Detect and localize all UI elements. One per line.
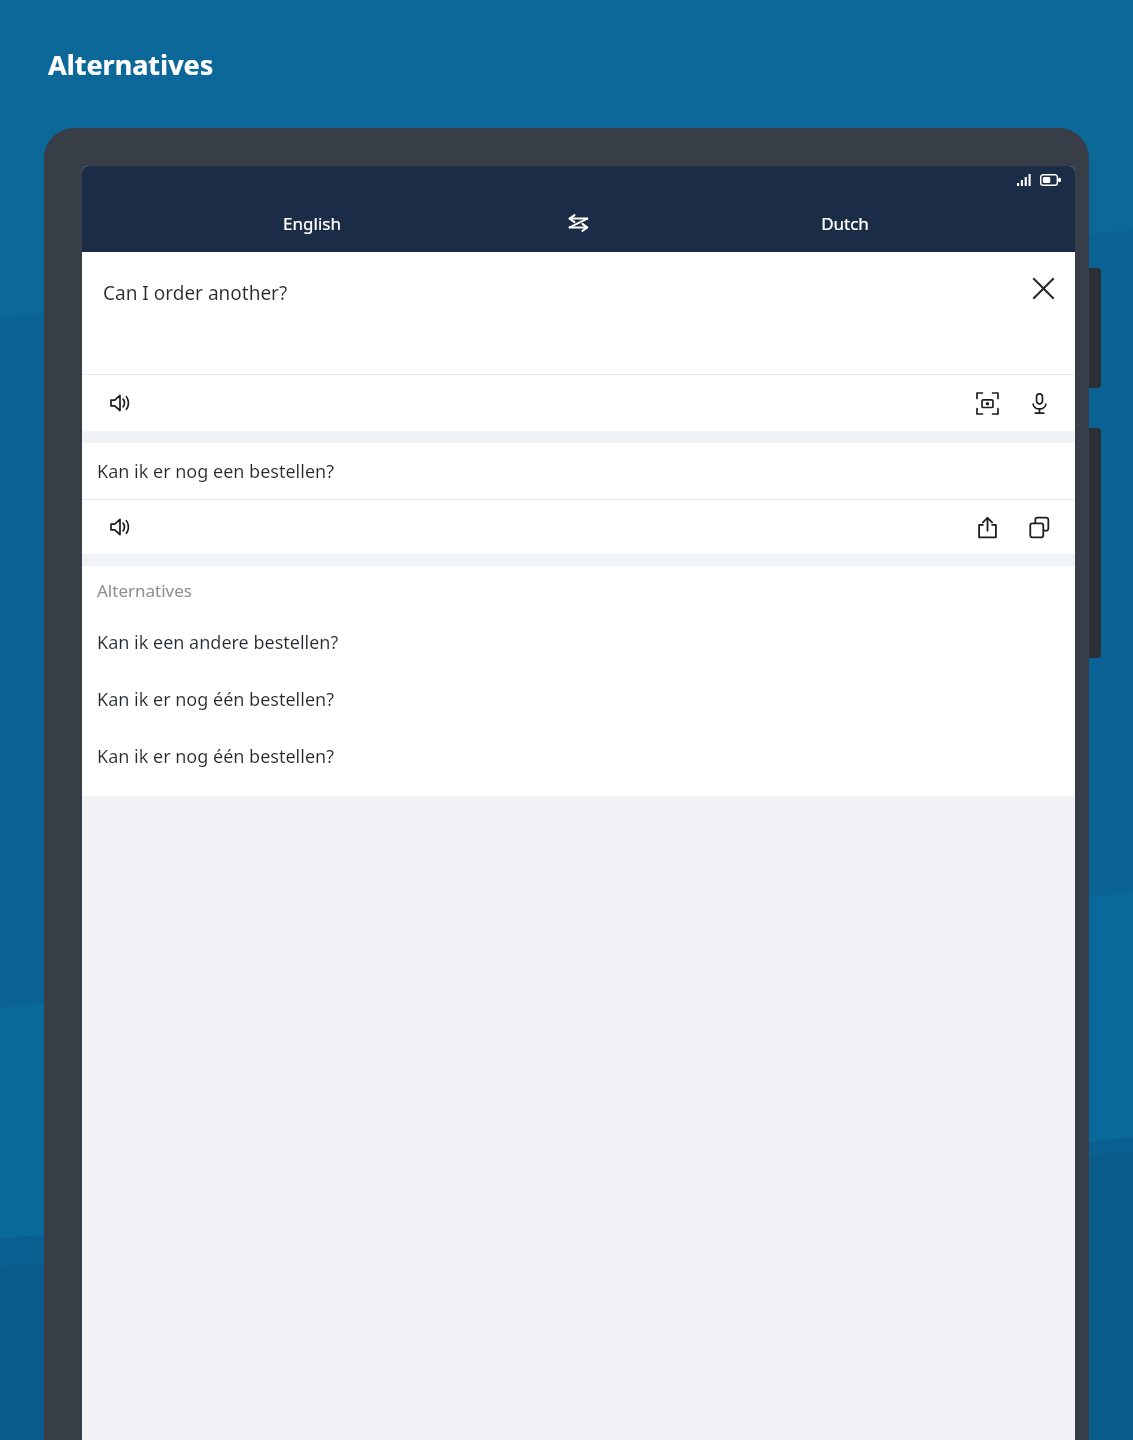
button[interactable]: Clear text: [1017, 262, 1069, 314]
button[interactable]: Copy: [1013, 501, 1065, 553]
button[interactable]: Swap languages: [541, 194, 615, 252]
staticText: Kan ik er nog een bestellen?: [97, 459, 334, 484]
button[interactable]: Voice input: [1013, 377, 1065, 429]
staticText: Dutch: [821, 212, 869, 235]
staticText: Kan ik er nog één bestellen?: [97, 687, 334, 712]
button[interactable]: Scan camera: [961, 377, 1013, 429]
staticText: Kan ik er nog één bestellen?: [97, 744, 334, 769]
button[interactable]: Listen translation: [94, 501, 146, 553]
button[interactable]: Dutch: [615, 194, 1075, 252]
button[interactable]: Share: [961, 501, 1013, 553]
button[interactable]: English: [82, 194, 541, 252]
button[interactable]: Kan ik er nog één bestellen?: [82, 728, 1075, 785]
button[interactable]: Kan ik een andere bestellen?: [82, 614, 1075, 671]
staticText: Can I order another?: [103, 280, 288, 306]
staticText: English: [283, 212, 341, 235]
button[interactable]: Kan ik er nog één bestellen?: [82, 671, 1075, 728]
staticText: Kan ik een andere bestellen?: [97, 630, 339, 655]
staticText: Alternatives: [97, 579, 192, 602]
button[interactable]: Listen: [94, 377, 146, 429]
staticText: Alternatives: [48, 46, 214, 83]
